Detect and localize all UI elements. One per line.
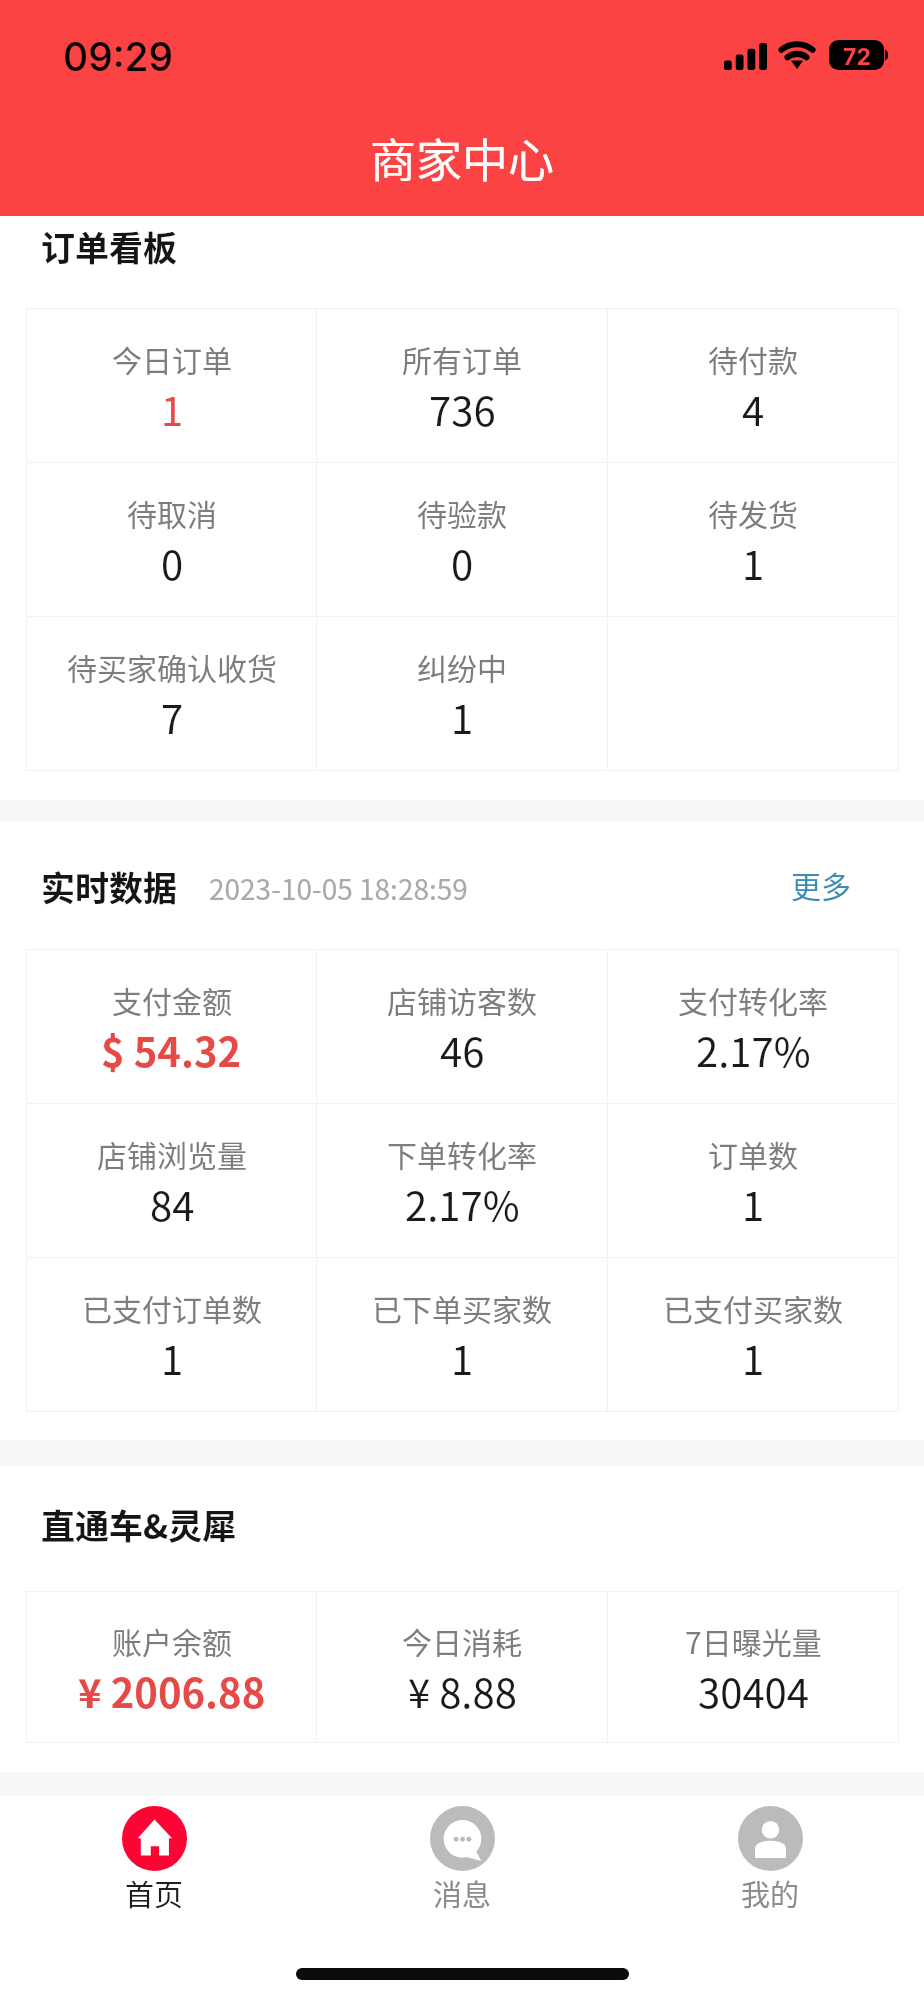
staticText: 待买家确认收货 bbox=[67, 645, 277, 688]
other: Profile bbox=[738, 1806, 803, 1871]
button[interactable]: 支付转化率 bbox=[608, 950, 898, 1103]
staticText: 已支付买家数 bbox=[663, 1286, 843, 1329]
staticText: 店铺浏览量 bbox=[97, 1132, 247, 1175]
staticText: 2.17% bbox=[696, 1021, 811, 1079]
staticText: 首页 bbox=[125, 1872, 184, 1914]
button[interactable]: 所有订单 bbox=[317, 309, 607, 462]
staticText: 直通车&灵犀 bbox=[41, 1500, 237, 1549]
button[interactable]: 账户余额 bbox=[27, 1592, 316, 1742]
staticText: 46 bbox=[440, 1021, 485, 1079]
button[interactable]: 店铺浏览量 bbox=[27, 1104, 316, 1257]
other: Home bbox=[122, 1806, 187, 1871]
button[interactable]: 下单转化率 bbox=[317, 1104, 607, 1257]
staticText: 1 bbox=[742, 1329, 765, 1387]
staticText: 84 bbox=[150, 1175, 195, 1233]
staticText: 1 bbox=[161, 1329, 184, 1387]
staticText: 2.17% bbox=[405, 1175, 520, 1233]
button[interactable]: Home bbox=[0, 1806, 308, 1956]
other: Messages bbox=[430, 1806, 495, 1871]
button[interactable]: Profile bbox=[616, 1806, 924, 1956]
staticText: 72 bbox=[843, 43, 871, 71]
button[interactable]: 已下单买家数 bbox=[317, 1258, 607, 1411]
button[interactable]: 纠纷中 bbox=[317, 617, 607, 770]
staticText: 我的 bbox=[741, 1872, 800, 1914]
staticText: 7日曝光量 bbox=[685, 1619, 822, 1662]
button[interactable]: 已支付买家数 bbox=[608, 1258, 898, 1411]
staticText: 店铺访客数 bbox=[387, 978, 537, 1021]
staticText: 订单数 bbox=[708, 1132, 798, 1175]
staticText: 账户余额 bbox=[112, 1619, 232, 1662]
staticText: 纠纷中 bbox=[417, 645, 507, 688]
button[interactable]: 今日消耗 bbox=[317, 1592, 607, 1742]
staticText: 所有订单 bbox=[402, 337, 522, 380]
staticText: 待付款 bbox=[708, 337, 798, 380]
button[interactable]: 支付金额 bbox=[27, 950, 316, 1103]
staticText: 1 bbox=[742, 1175, 765, 1233]
button[interactable]: 今日订单 bbox=[27, 309, 316, 462]
staticText: 7 bbox=[161, 688, 184, 746]
staticText: 更多 bbox=[791, 863, 851, 906]
staticText: $ 54.32 bbox=[101, 1021, 242, 1079]
staticText: 已支付订单数 bbox=[82, 1286, 262, 1329]
staticText: 09:29 bbox=[63, 33, 174, 80]
staticText: 1 bbox=[161, 380, 184, 438]
button[interactable]: 更多 bbox=[791, 863, 851, 906]
staticText: 4 bbox=[742, 380, 765, 438]
staticText: 实时数据 bbox=[41, 862, 177, 911]
staticText: 30404 bbox=[698, 1662, 809, 1720]
staticText: 已下单买家数 bbox=[372, 1286, 552, 1329]
staticText: 消息 bbox=[433, 1872, 492, 1914]
staticText: ¥ 8.88 bbox=[408, 1662, 517, 1720]
button[interactable]: 待付款 bbox=[608, 309, 898, 462]
staticText: 订单看板 bbox=[41, 222, 177, 271]
button[interactable]: 待取消 bbox=[27, 463, 316, 616]
staticText: 1 bbox=[451, 1329, 474, 1387]
button[interactable]: Messages bbox=[308, 1806, 616, 1956]
staticText: 商家中心 bbox=[370, 124, 554, 191]
staticText: 1 bbox=[742, 534, 765, 592]
staticText: 今日消耗 bbox=[402, 1619, 522, 1662]
button[interactable]: 订单数 bbox=[608, 1104, 898, 1257]
button[interactable]: 待发货 bbox=[608, 463, 898, 616]
staticText: 736 bbox=[429, 380, 496, 438]
button[interactable]: 待验款 bbox=[317, 463, 607, 616]
staticText: 支付转化率 bbox=[678, 978, 828, 1021]
button[interactable]: 待买家确认收货 bbox=[27, 617, 316, 770]
staticText: 待验款 bbox=[417, 491, 507, 534]
staticText: 支付金额 bbox=[112, 978, 232, 1021]
staticText: 今日订单 bbox=[112, 337, 232, 380]
staticText: 待发货 bbox=[708, 491, 798, 534]
staticText: 下单转化率 bbox=[387, 1132, 537, 1175]
staticText: 0 bbox=[161, 534, 184, 592]
button[interactable]: 店铺访客数 bbox=[317, 950, 607, 1103]
staticText: 0 bbox=[451, 534, 474, 592]
button[interactable]: 7日曝光量 bbox=[608, 1592, 898, 1742]
staticText: 1 bbox=[451, 688, 474, 746]
staticText: 2023-10-05 18:28:59 bbox=[209, 868, 468, 909]
staticText: 待取消 bbox=[127, 491, 217, 534]
staticText: ¥ 2006.88 bbox=[78, 1662, 266, 1720]
button[interactable]: 已支付订单数 bbox=[27, 1258, 316, 1411]
